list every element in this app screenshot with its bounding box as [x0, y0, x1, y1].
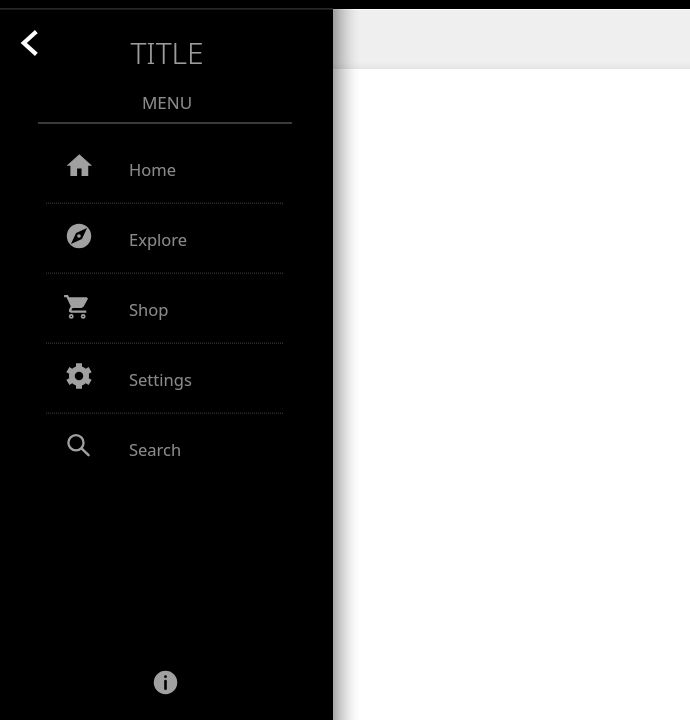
staticText: TITLE	[2, 32, 332, 73]
staticText: MENU	[2, 91, 332, 114]
staticText: Shop	[129, 298, 169, 320]
button[interactable]: Shop	[0, 275, 333, 345]
button[interactable]: Info	[145, 662, 185, 702]
staticText: Home	[129, 158, 176, 180]
staticText: Settings	[129, 368, 192, 390]
button[interactable]: Explore	[0, 205, 333, 275]
button[interactable]: Search	[0, 415, 333, 485]
staticText: Search	[129, 438, 182, 460]
button[interactable]: Settings	[0, 345, 333, 415]
staticText: Explore	[129, 228, 188, 250]
button[interactable]: Back	[8, 21, 52, 65]
button[interactable]: Home	[0, 135, 333, 205]
